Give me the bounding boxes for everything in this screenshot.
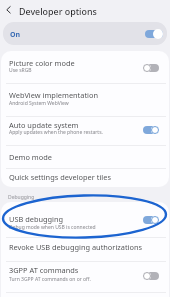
staticText: WebView implementation bbox=[9, 90, 99, 100]
button[interactable] bbox=[143, 63, 159, 72]
staticText: Apply updates when the phone restarts. bbox=[9, 129, 103, 136]
button[interactable]: On bbox=[3, 22, 167, 45]
button[interactable] bbox=[143, 125, 159, 134]
button[interactable] bbox=[1, 83, 169, 115]
staticText: Turn 3GPP AT commands on or off. bbox=[9, 276, 91, 283]
button[interactable] bbox=[145, 28, 163, 39]
button[interactable] bbox=[143, 215, 159, 224]
staticText: On bbox=[10, 30, 21, 40]
staticText: Auto update system bbox=[9, 120, 79, 130]
button[interactable] bbox=[1, 51, 169, 82]
staticText: Debugging bbox=[8, 194, 35, 201]
button[interactable] bbox=[1, 145, 169, 168]
button[interactable] bbox=[143, 271, 159, 280]
staticText: USB debugging bbox=[9, 214, 64, 224]
staticText: Revoke USB debugging authorizations bbox=[9, 242, 143, 252]
staticText: Android System WebView bbox=[9, 100, 69, 107]
staticText: Picture color mode bbox=[9, 58, 75, 68]
button[interactable] bbox=[1, 202, 169, 236]
button[interactable] bbox=[1, 237, 169, 260]
staticText: Developer options bbox=[19, 5, 97, 17]
button[interactable] bbox=[1, 261, 169, 292]
staticText: Use sRGB bbox=[9, 67, 32, 74]
staticText: Debug mode when USB is connected bbox=[9, 224, 96, 231]
staticText: 3GPP AT commands bbox=[9, 265, 79, 275]
staticText: Demo mode bbox=[9, 152, 52, 162]
button[interactable] bbox=[1, 116, 169, 144]
button[interactable]: Developer options bbox=[0, 0, 170, 20]
button[interactable] bbox=[1, 168, 169, 187]
staticText: Quick settings developer tiles bbox=[9, 172, 111, 182]
